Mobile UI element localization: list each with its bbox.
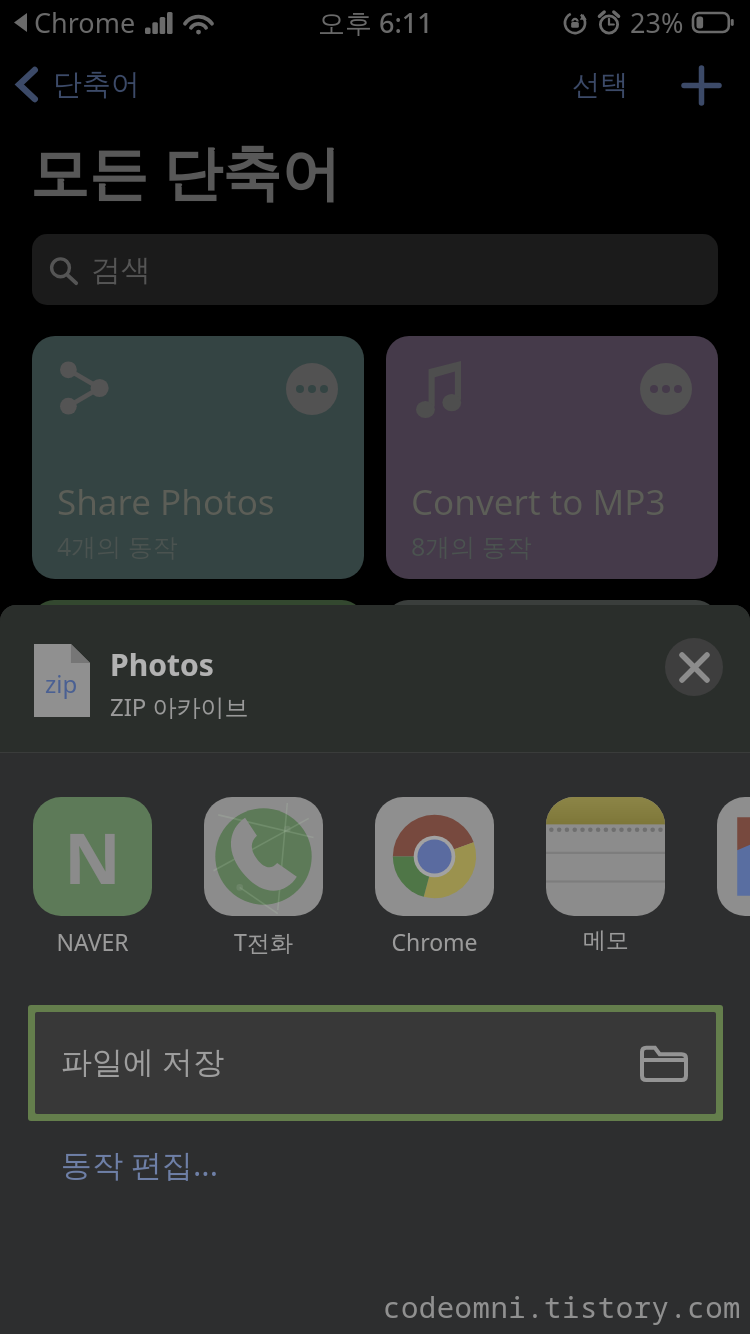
staticText: 동작 편집... [61, 1143, 218, 1185]
staticText: codeomni.tistory.com [383, 1287, 742, 1326]
staticText: 오후 6:11 [318, 4, 433, 41]
button[interactable]: 파일에 저장 [35, 1012, 716, 1114]
staticText: 23% [630, 4, 684, 41]
staticText: NAVER [56, 926, 129, 957]
button[interactable]: More options [32, 336, 364, 579]
button[interactable]: Chrome [375, 797, 494, 957]
button[interactable] [717, 797, 750, 926]
staticText: 선택 [572, 67, 628, 102]
button[interactable]: More options [286, 363, 338, 415]
staticText: Convert to MP3 [411, 478, 666, 526]
staticText: 8개의 동작 [411, 529, 532, 563]
button[interactable]: Add shortcut [678, 62, 724, 108]
staticText: 단축어 [53, 66, 140, 103]
button[interactable]: N [33, 797, 152, 957]
staticText: zip [45, 667, 78, 700]
button[interactable]: 메모 [546, 797, 665, 955]
button[interactable]: T전화 [204, 797, 323, 957]
staticText: Chrome [34, 4, 136, 41]
staticText: 검색 [91, 251, 151, 289]
button[interactable]: 검색 [32, 234, 718, 305]
staticText: 파일에 저장 [61, 1040, 225, 1082]
button[interactable]: Close [665, 638, 723, 696]
button[interactable]: 단축어 [0, 66, 152, 103]
button[interactable]: 선택 [562, 57, 638, 112]
staticText: 4개의 동작 [57, 529, 178, 563]
staticText: Photos [110, 644, 214, 685]
staticText: 모든 단축어 [30, 131, 341, 212]
staticText: Share Photos [57, 478, 275, 526]
staticText: T전화 [234, 926, 293, 957]
staticText: N [64, 809, 121, 904]
button[interactable]: 동작 편집... [61, 1135, 218, 1193]
staticText: 메모 [583, 926, 629, 955]
staticText: Chrome [391, 926, 478, 957]
button[interactable]: More options [640, 363, 692, 415]
staticText: ZIP 아카이브 [110, 690, 249, 723]
button[interactable]: More options [386, 336, 718, 579]
